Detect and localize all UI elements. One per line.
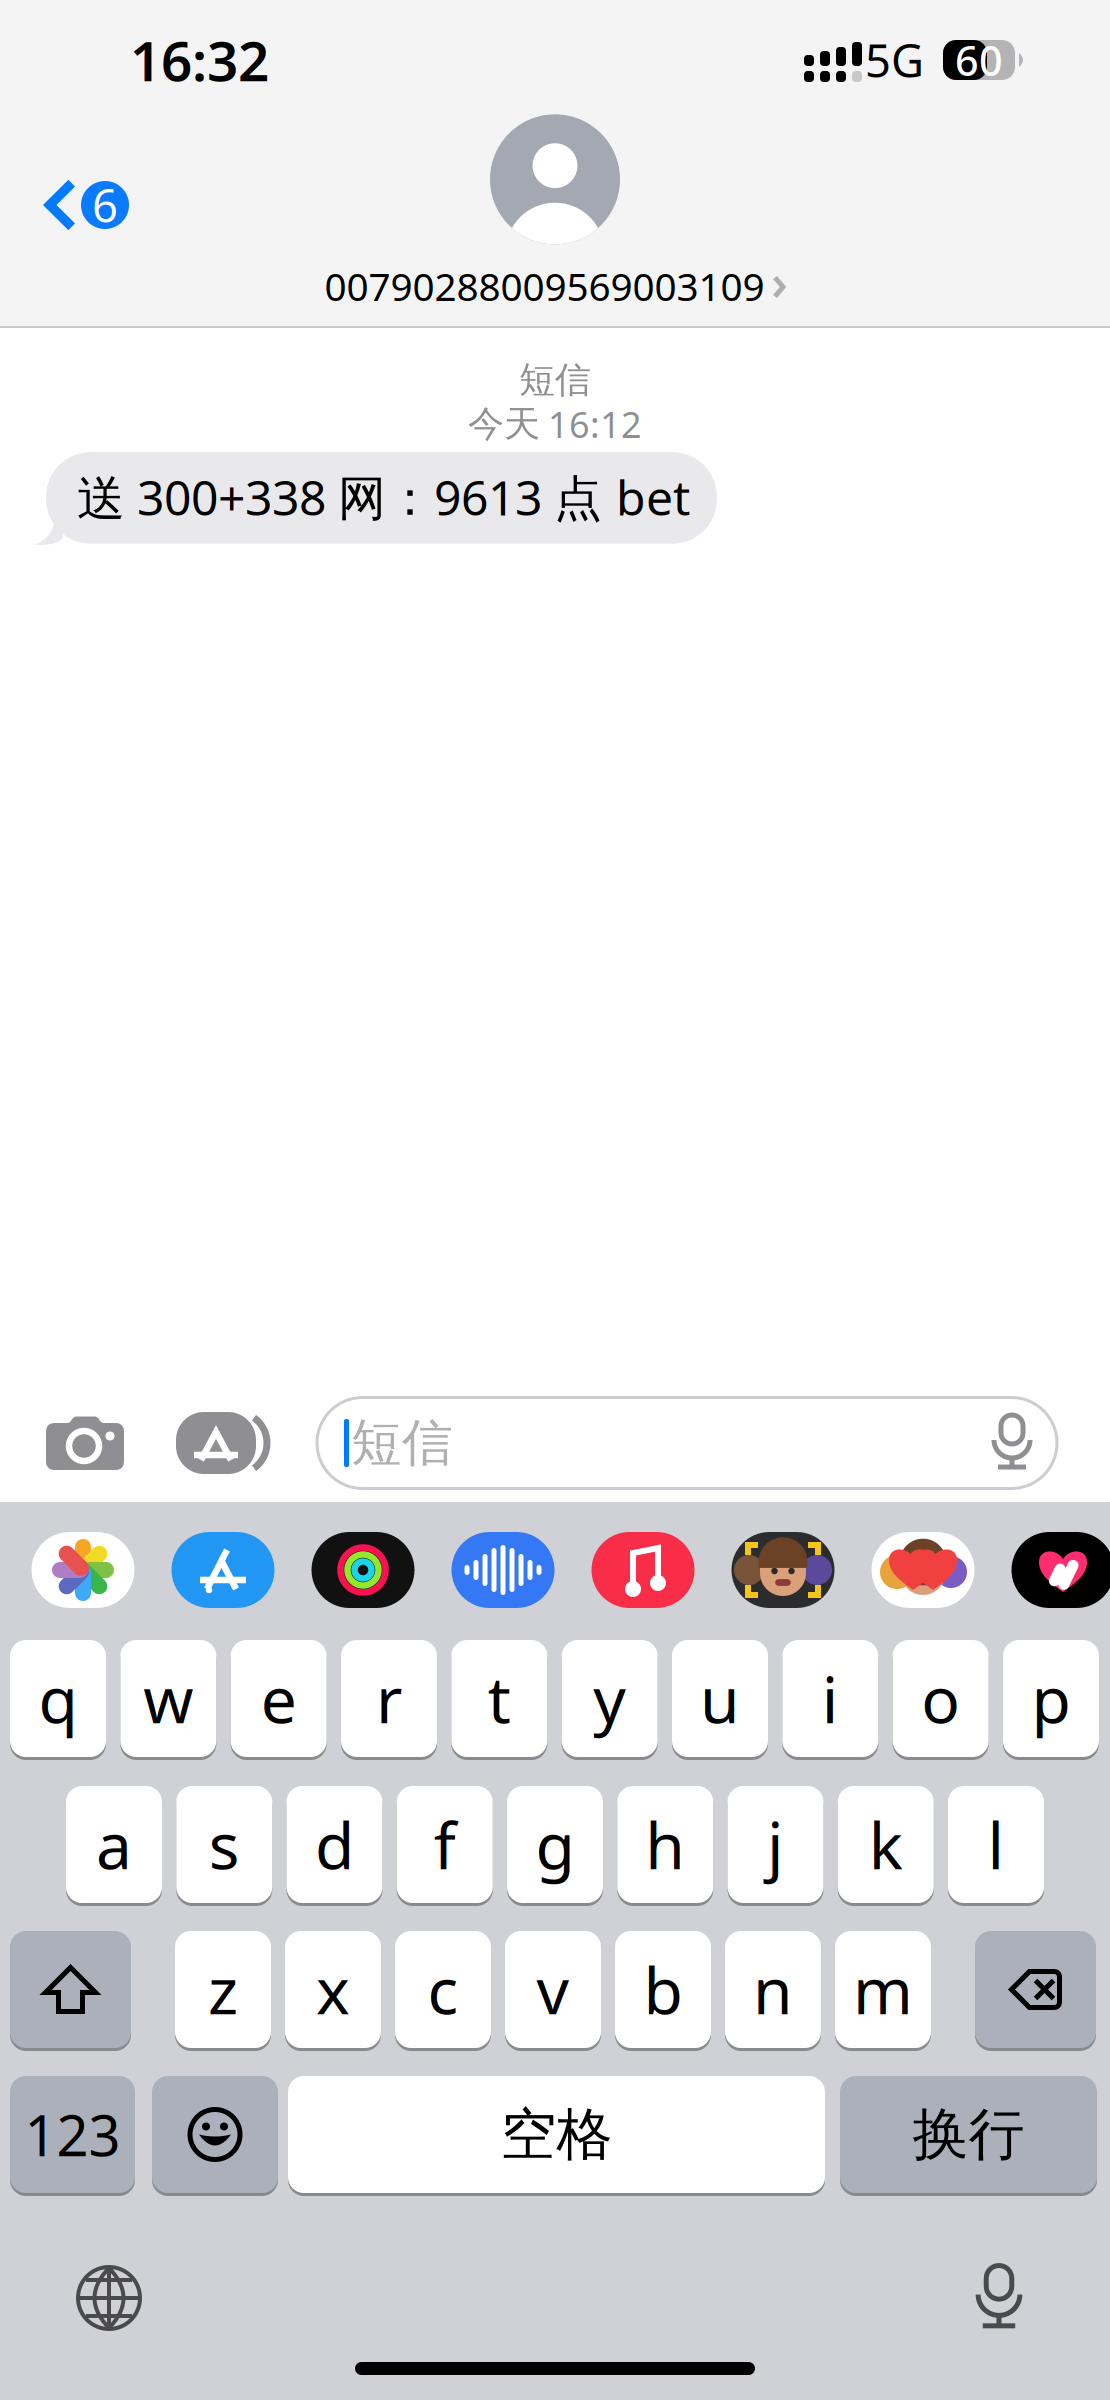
staticText: c xyxy=(427,1947,458,2032)
button[interactable]: n xyxy=(725,1931,821,2048)
button[interactable]: Shift xyxy=(10,1931,131,2048)
button[interactable]: 123 xyxy=(10,2076,135,2193)
button[interactable]: r xyxy=(341,1640,437,1757)
button[interactable]: t xyxy=(451,1640,547,1757)
staticText: 60 xyxy=(955,33,1003,87)
staticText: 6 xyxy=(92,175,118,235)
staticText: r xyxy=(376,1656,402,1741)
button[interactable]: m xyxy=(835,1931,931,2048)
button[interactable]: Music xyxy=(591,1532,694,1608)
button[interactable]: s xyxy=(176,1786,272,1903)
staticText: n xyxy=(753,1947,793,2032)
staticText: x xyxy=(316,1947,350,2032)
button[interactable]: l xyxy=(948,1786,1044,1903)
staticText: y xyxy=(593,1656,626,1741)
button[interactable]: x xyxy=(285,1931,381,2048)
button[interactable]: j xyxy=(727,1786,823,1903)
staticText: g xyxy=(535,1802,574,1887)
staticText: f xyxy=(434,1802,456,1887)
button[interactable]: Voice memo xyxy=(451,1532,554,1608)
staticText: b xyxy=(643,1947,682,2032)
button[interactable]: Next keyboard xyxy=(54,2255,164,2341)
staticText: 短信 xyxy=(351,1412,453,1474)
button[interactable]: k xyxy=(838,1786,934,1903)
staticText: m xyxy=(853,1947,913,2032)
button[interactable]: e xyxy=(231,1640,327,1757)
button[interactable]: 换行 xyxy=(840,2076,1097,2193)
staticText: u xyxy=(700,1656,740,1741)
staticText: a xyxy=(96,1802,132,1887)
staticText: 123 xyxy=(24,2097,120,2172)
button[interactable]: Memoji xyxy=(871,1532,974,1608)
staticText: 5G xyxy=(865,30,924,90)
button[interactable]: g xyxy=(507,1786,603,1903)
staticText: h xyxy=(645,1802,685,1887)
button[interactable]: Memoji camera xyxy=(731,1532,834,1608)
button[interactable]: i xyxy=(782,1640,878,1757)
button[interactable]: v xyxy=(505,1931,601,2048)
staticText: l xyxy=(987,1802,1004,1887)
button[interactable]: Apps xyxy=(177,1397,317,1489)
button[interactable]: a xyxy=(66,1786,162,1903)
staticText: 00790288009569003109 xyxy=(324,260,764,312)
staticText: 短信 xyxy=(519,358,591,402)
button[interactable]: App Store xyxy=(171,1532,274,1608)
staticText: z xyxy=(208,1947,238,2032)
staticText: 16:12 xyxy=(548,400,642,448)
button[interactable]: f xyxy=(397,1786,493,1903)
button[interactable]: w xyxy=(120,1640,216,1757)
button[interactable]: d xyxy=(286,1786,382,1903)
button[interactable]: c xyxy=(395,1931,491,2048)
staticText: i xyxy=(822,1656,839,1741)
staticText: 空格 xyxy=(500,2100,612,2169)
staticText: 16:32 xyxy=(130,24,269,96)
button[interactable]: Camera xyxy=(0,1397,177,1489)
button[interactable]: Dictation xyxy=(944,2253,1054,2343)
staticText: p xyxy=(1031,1656,1070,1741)
button[interactable]: p xyxy=(1003,1640,1099,1757)
button[interactable]: b xyxy=(615,1931,711,2048)
staticText: s xyxy=(209,1802,240,1887)
button[interactable]: o xyxy=(893,1640,989,1757)
staticText: e xyxy=(261,1656,297,1741)
staticText: q xyxy=(38,1656,77,1741)
button[interactable]: q xyxy=(10,1640,106,1757)
button[interactable]: z xyxy=(175,1931,271,2048)
button[interactable]: Delete xyxy=(975,1931,1096,2048)
staticText: v xyxy=(536,1947,569,2032)
button[interactable]: y xyxy=(562,1640,658,1757)
button[interactable]: Message field xyxy=(317,1397,1057,1488)
button[interactable]: 空格 xyxy=(288,2076,825,2193)
staticText: j xyxy=(767,1802,784,1887)
button[interactable]: Photos xyxy=(31,1532,134,1608)
button[interactable]: u xyxy=(672,1640,768,1757)
button[interactable]: Digital Touch xyxy=(1011,1532,1110,1608)
staticText: 送 300+338 网：9613 点 bet xyxy=(77,465,690,529)
button[interactable]: Back, 6 unread xyxy=(0,150,157,260)
button[interactable]: h xyxy=(617,1786,713,1903)
staticText: 换行 xyxy=(912,2100,1024,2169)
staticText: w xyxy=(143,1656,193,1741)
button[interactable]: Fitness xyxy=(311,1532,414,1608)
staticText: d xyxy=(315,1802,354,1887)
staticText: o xyxy=(921,1656,960,1741)
staticText: 今天 xyxy=(468,402,540,446)
staticText: k xyxy=(869,1802,903,1887)
button[interactable]: Emoji xyxy=(152,2076,278,2193)
staticText: t xyxy=(488,1656,511,1741)
